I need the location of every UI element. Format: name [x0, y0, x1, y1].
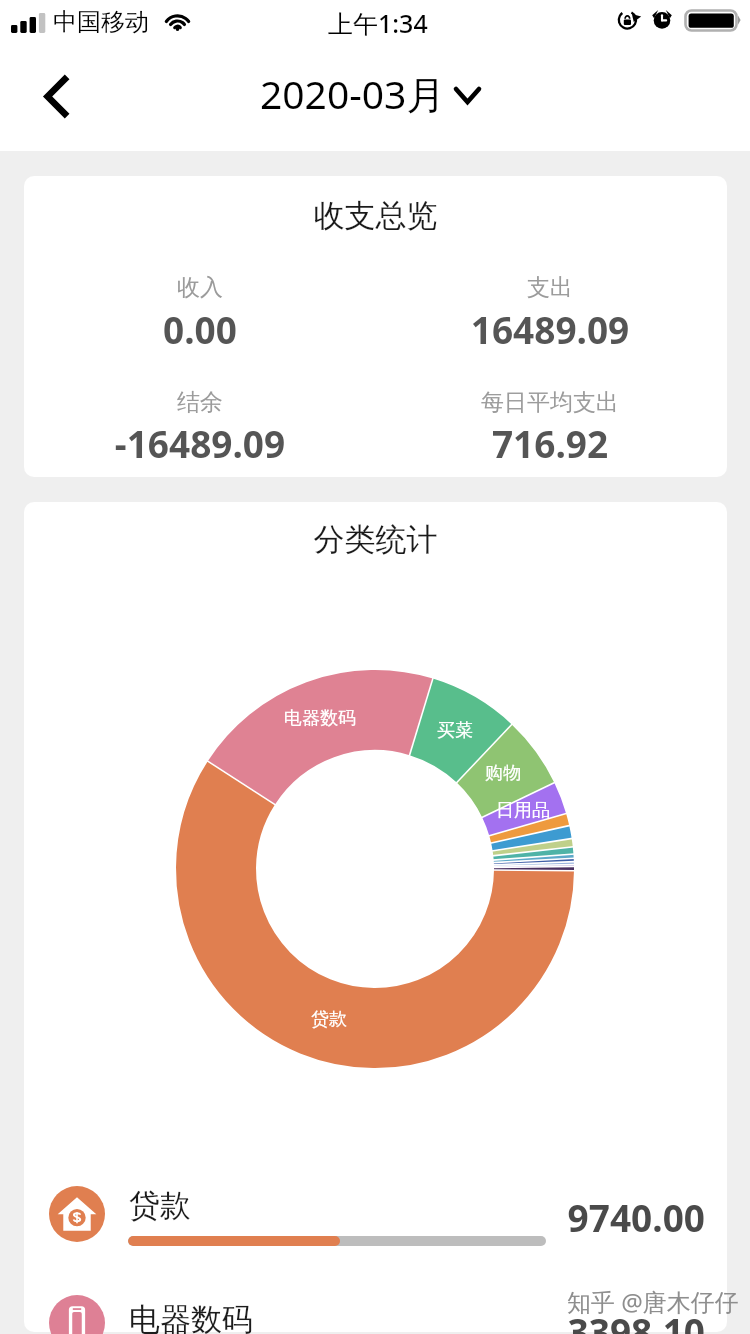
button[interactable]: 电器数码	[0, 1281, 750, 1334]
staticText: 电器数码	[129, 1300, 253, 1334]
staticText: 分类统计	[24, 520, 727, 559]
staticText: 收入	[40, 273, 360, 302]
staticText: 716.92	[390, 418, 710, 468]
staticText: 3398.10	[0, 1306, 705, 1334]
staticText: 上午1:34	[328, 6, 428, 40]
staticText: 日用品	[487, 799, 559, 822]
staticText: 结余	[40, 388, 360, 417]
staticText: 购物	[479, 762, 527, 785]
staticText: 9740.00	[0, 1192, 705, 1242]
staticText: 贷款	[305, 1008, 353, 1031]
staticText: 2020-03月	[260, 67, 446, 120]
button[interactable]: 2020-03月	[260, 67, 481, 120]
staticText: 每日平均支出	[390, 388, 710, 417]
button[interactable]: 贷款	[0, 1172, 750, 1284]
staticText: 电器数码	[272, 707, 368, 730]
staticText: 支出	[390, 273, 710, 302]
staticText: 贷款	[129, 1186, 191, 1225]
staticText: 知乎 @唐木仔仔	[567, 1285, 739, 1318]
staticText: -16489.09	[40, 418, 360, 468]
staticText: 中国移动	[53, 7, 149, 37]
staticText: 买菜	[431, 719, 479, 742]
button[interactable]: Back	[24, 72, 88, 120]
staticText: 0.00	[40, 304, 360, 354]
staticText: 收支总览	[24, 196, 727, 235]
staticText: 16489.09	[390, 304, 710, 354]
